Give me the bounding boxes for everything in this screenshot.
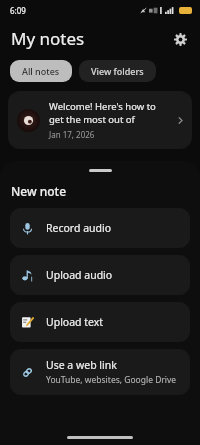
button[interactable]: Record audio <box>10 208 190 248</box>
staticText: YouTube, websites, Google Drive <box>46 374 177 386</box>
staticText: Jan 17, 2026 <box>49 129 95 140</box>
staticText: Upload text <box>46 315 104 329</box>
staticText: Upload audio <box>46 268 113 282</box>
staticText: Record audio <box>46 221 112 235</box>
button[interactable]: Upload text <box>10 302 190 342</box>
staticText: Welcome! Here's how to get the most out … <box>49 100 171 126</box>
button[interactable]: Settings <box>167 26 193 52</box>
staticText: 6:09 <box>10 5 26 16</box>
staticText: All notes <box>22 65 60 77</box>
staticText: My notes <box>11 27 85 50</box>
button[interactable]: All notes <box>10 60 72 82</box>
button[interactable]: Use a web link <box>10 349 190 395</box>
staticText: New note <box>11 183 67 199</box>
button[interactable]: Welcome! Here's how to get the most out … <box>8 91 192 149</box>
button[interactable]: View folders <box>79 60 156 82</box>
staticText: Use a web link <box>46 358 117 372</box>
staticText: View folders <box>91 65 144 77</box>
button[interactable]: Upload audio <box>10 255 190 295</box>
